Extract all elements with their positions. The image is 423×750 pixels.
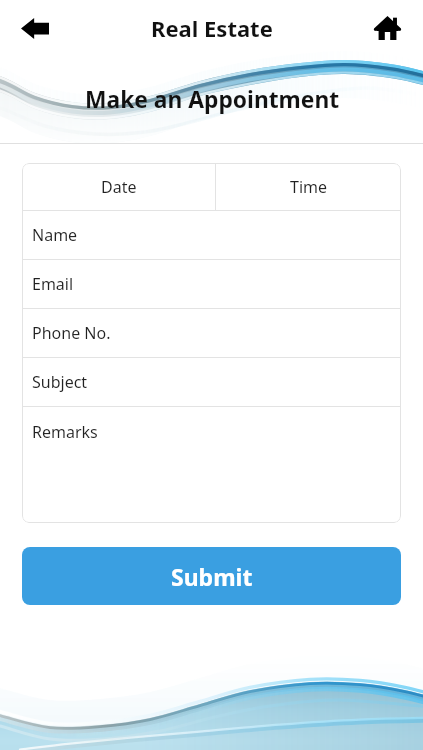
button[interactable]: Remarks	[22, 407, 401, 523]
staticText: Submit	[171, 561, 253, 592]
staticText: Subject	[32, 371, 88, 393]
staticText: Time	[290, 176, 328, 198]
staticText: Make an Appointment	[85, 84, 340, 115]
button[interactable]: Submit	[22, 547, 401, 605]
button[interactable]: Subject	[22, 358, 401, 406]
staticText: Phone No.	[32, 322, 111, 344]
button[interactable]: Phone No.	[22, 309, 401, 357]
button[interactable]: Email	[22, 260, 401, 308]
staticText: Date	[101, 176, 137, 198]
staticText: Name	[32, 224, 78, 246]
staticText: Email	[32, 273, 74, 295]
button[interactable]: Date	[22, 163, 215, 210]
staticText: Real Estate	[151, 13, 273, 43]
button[interactable]: Name	[22, 211, 401, 259]
button[interactable]: Home	[362, 3, 412, 53]
staticText: Remarks	[32, 421, 98, 443]
button[interactable]: Time	[216, 163, 401, 210]
button[interactable]: Back	[10, 3, 60, 53]
